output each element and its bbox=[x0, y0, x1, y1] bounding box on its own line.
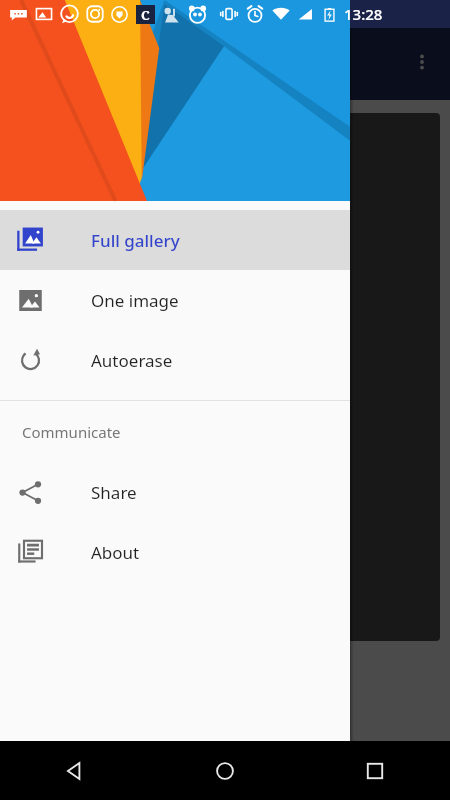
button[interactable]: Recent apps bbox=[300, 741, 450, 800]
button[interactable]: Back bbox=[0, 741, 150, 800]
button[interactable]: More options bbox=[400, 40, 444, 84]
staticText: Share bbox=[91, 481, 137, 504]
button[interactable]: About bbox=[0, 522, 350, 582]
button[interactable]: Autoerase bbox=[0, 330, 350, 390]
button[interactable]: Share bbox=[0, 462, 350, 522]
button[interactable]: Full gallery bbox=[0, 210, 350, 270]
button[interactable]: One image bbox=[0, 270, 350, 330]
staticText: Autoerase bbox=[91, 349, 173, 372]
button[interactable]: Home bbox=[150, 741, 300, 800]
staticText: About bbox=[91, 541, 140, 564]
staticText: One image bbox=[91, 289, 179, 312]
staticText: 13:28 bbox=[344, 4, 383, 24]
staticText: Full gallery bbox=[91, 229, 180, 252]
staticText: Communicate bbox=[22, 422, 121, 442]
staticText: C bbox=[141, 6, 150, 24]
